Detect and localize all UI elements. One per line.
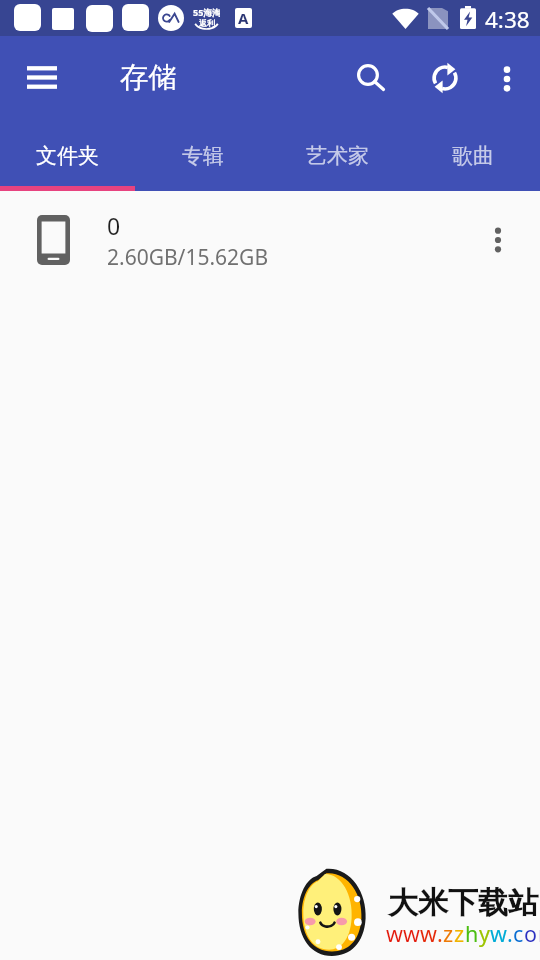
staticText: 返利 — [199, 18, 215, 28]
staticText: A — [238, 8, 249, 28]
staticText: m — [538, 919, 540, 948]
button[interactable]: Menu — [14, 49, 70, 105]
staticText: 歌曲 — [452, 143, 494, 169]
staticText: z — [454, 919, 465, 948]
staticText: 艺术家 — [306, 143, 369, 169]
staticText: w — [490, 919, 507, 948]
button[interactable]: More options — [479, 51, 535, 107]
staticText: h — [465, 919, 479, 948]
staticText: 大米下载站 — [388, 884, 538, 922]
staticText: 2.60GB/15.62GB — [107, 243, 269, 272]
staticText: 存储 — [120, 60, 177, 96]
staticText: 文件夹 — [36, 143, 99, 169]
staticText: c — [513, 919, 524, 948]
staticText: z — [443, 919, 454, 948]
staticText: y — [479, 919, 490, 948]
staticText: w — [386, 919, 403, 948]
button[interactable]: 艺术家 — [270, 122, 405, 191]
button[interactable]: 歌曲 — [405, 122, 540, 191]
staticText: 55海淘 — [193, 6, 220, 18]
button[interactable]: 专辑 — [135, 122, 270, 191]
staticText: . — [437, 919, 443, 948]
staticText: w — [403, 919, 420, 948]
button[interactable]: 0 — [0, 191, 540, 289]
button[interactable]: Refresh — [417, 50, 473, 106]
button[interactable]: More options — [470, 212, 526, 268]
staticText: 专辑 — [182, 143, 224, 169]
staticText: w — [420, 919, 437, 948]
staticText: . — [507, 919, 513, 948]
staticText: o — [524, 919, 538, 948]
staticText: 0 — [107, 210, 121, 241]
button[interactable]: Search — [343, 49, 399, 105]
staticText: 4:38 — [485, 4, 530, 35]
button[interactable]: 文件夹 — [0, 122, 135, 191]
